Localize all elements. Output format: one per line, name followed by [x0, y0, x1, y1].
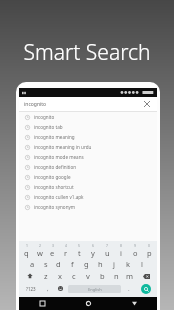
button[interactable]: n	[109, 270, 123, 282]
button[interactable]: incognito mode means	[19, 152, 157, 162]
staticText: 0	[148, 243, 150, 247]
button[interactable]: w	[33, 247, 46, 258]
staticText: z	[44, 271, 48, 281]
button[interactable]: incognito tab	[19, 122, 157, 132]
button[interactable]: incognito definition	[19, 162, 157, 172]
button[interactable]: h	[93, 258, 107, 270]
staticText: j	[113, 259, 115, 269]
staticText: ?123	[26, 286, 36, 292]
staticText: i	[120, 248, 122, 258]
staticText: n	[114, 271, 119, 281]
staticText: s	[44, 259, 48, 269]
staticText: incognito definition	[34, 164, 77, 170]
staticText: incognito tab	[34, 124, 63, 130]
staticText: h	[98, 259, 103, 269]
staticText: w	[37, 248, 43, 258]
staticText: l	[141, 259, 143, 269]
button[interactable]: f	[65, 258, 79, 270]
button[interactable]: v	[81, 270, 95, 282]
staticText: incognito	[24, 101, 47, 108]
staticText: b	[100, 271, 105, 281]
button[interactable]: incognito synonym	[19, 202, 157, 212]
button[interactable]: Emoji	[54, 283, 67, 294]
staticText: d	[56, 259, 61, 269]
button[interactable]: j	[107, 258, 121, 270]
button[interactable]: incognito	[19, 97, 157, 111]
button[interactable]: d	[52, 258, 65, 270]
button[interactable]: l	[135, 258, 149, 270]
button[interactable]: English	[68, 285, 121, 293]
button[interactable]: s	[39, 258, 52, 270]
button[interactable]: .	[122, 283, 135, 294]
staticText: 7	[106, 243, 108, 247]
button[interactable]: Recents	[19, 297, 65, 310]
staticText: .	[128, 285, 130, 293]
button[interactable]: incognito cullen v1.apk	[19, 192, 157, 202]
staticText: q	[24, 248, 29, 258]
staticText: English	[88, 287, 102, 292]
button[interactable]: incognito meaning in urdu	[19, 142, 157, 152]
button[interactable]: q	[20, 247, 33, 258]
staticText: 8	[120, 243, 122, 247]
button[interactable]: z	[39, 270, 53, 282]
button[interactable]: Backspace	[137, 270, 156, 282]
staticText: t	[78, 248, 81, 258]
staticText: 4	[65, 243, 67, 247]
button[interactable]: Back	[111, 297, 157, 310]
staticText: incognito	[34, 114, 55, 120]
button[interactable]: a	[26, 258, 39, 270]
staticText: ,	[47, 285, 49, 293]
staticText: incognito cullen v1.apk	[34, 194, 84, 200]
button[interactable]: b	[95, 270, 109, 282]
button[interactable]: i	[114, 247, 128, 258]
button[interactable]: incognito	[19, 112, 157, 122]
button[interactable]: t	[72, 247, 86, 258]
button[interactable]: Clear search	[142, 99, 152, 109]
staticText: a	[30, 259, 35, 269]
button[interactable]: Home	[65, 297, 111, 310]
button[interactable]: u	[100, 247, 114, 258]
button[interactable]: e	[46, 247, 59, 258]
staticText: 2	[39, 243, 41, 247]
staticText: y	[91, 248, 95, 258]
staticText: 9	[134, 243, 136, 247]
staticText: 6	[92, 243, 94, 247]
staticText: u	[105, 248, 110, 258]
staticText: 3	[52, 243, 54, 247]
button[interactable]: p	[142, 247, 156, 258]
staticText: incognito google	[34, 174, 71, 180]
button[interactable]: m	[123, 270, 137, 282]
staticText: m	[126, 271, 134, 281]
button[interactable]: o	[128, 247, 142, 258]
staticText: k	[126, 259, 131, 269]
staticText: e	[50, 248, 55, 258]
staticText: p	[147, 248, 152, 258]
staticText: 5	[78, 243, 80, 247]
button[interactable]: incognito meaning	[19, 132, 157, 142]
staticText: incognito meaning in urdu	[34, 144, 92, 150]
staticText: incognito mode means	[34, 154, 84, 160]
button[interactable]: c	[67, 270, 81, 282]
button[interactable]: incognito google	[19, 172, 157, 182]
button[interactable]: incognito shortcut	[19, 182, 157, 192]
button[interactable]: g	[79, 258, 93, 270]
button[interactable]: x	[53, 270, 67, 282]
button[interactable]: ,	[41, 283, 54, 294]
button[interactable]: r	[59, 247, 72, 258]
staticText: incognito shortcut	[34, 184, 74, 190]
button[interactable]: ?123	[20, 283, 41, 294]
staticText: g	[84, 259, 89, 269]
staticText: incognito meaning	[34, 134, 75, 140]
staticText: c	[72, 271, 76, 281]
staticText: o	[133, 248, 138, 258]
staticText: f	[71, 259, 74, 269]
button[interactable]: Shift	[20, 270, 39, 282]
button[interactable]: k	[121, 258, 135, 270]
staticText: Smart Search	[23, 38, 151, 67]
staticText: x	[58, 271, 62, 281]
button[interactable]: Search	[135, 283, 156, 294]
staticText: v	[86, 271, 90, 281]
staticText: r	[64, 248, 68, 258]
staticText: incognito synonym	[34, 204, 76, 210]
button[interactable]: y	[86, 247, 100, 258]
